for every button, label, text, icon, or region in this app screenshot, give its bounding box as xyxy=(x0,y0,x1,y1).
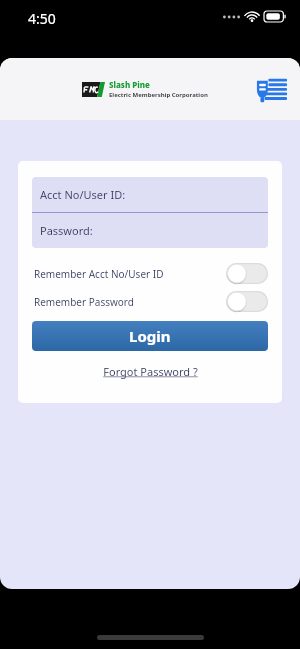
button[interactable]: Slash Pine xyxy=(80,77,210,101)
staticText: 4:50 xyxy=(28,9,56,28)
button[interactable]: Forgot Password ? xyxy=(99,362,202,381)
button[interactable]: Energy xyxy=(255,76,287,103)
staticText: Login xyxy=(129,326,171,346)
button[interactable]: Acct No/User ID: xyxy=(32,177,268,212)
staticText: Electric Membership Corporation xyxy=(109,91,208,99)
button[interactable]: Remember Password xyxy=(226,291,268,312)
button[interactable]: Password: xyxy=(32,213,268,248)
staticText: Acct No/User ID: xyxy=(40,187,126,202)
staticText: Remember Acct No/User ID xyxy=(34,267,164,281)
button[interactable]: Login xyxy=(32,321,268,351)
button[interactable]: Remember Acct No/User ID xyxy=(226,263,268,284)
staticText: Remember Password xyxy=(34,295,134,309)
staticText: Password: xyxy=(40,223,93,238)
staticText: Forgot Password ? xyxy=(103,364,198,379)
staticText: Slash Pine xyxy=(109,79,150,90)
